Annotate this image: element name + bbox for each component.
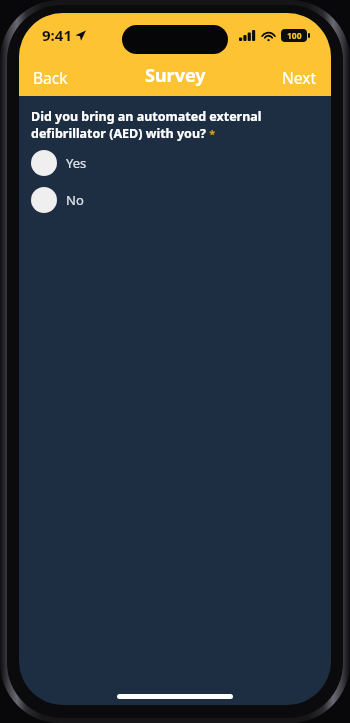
staticText: Yes	[66, 154, 87, 172]
button[interactable]: Select Yes	[31, 150, 319, 176]
staticText: Next	[282, 67, 317, 88]
button[interactable]: Back	[25, 62, 76, 93]
staticText: Back	[33, 67, 68, 88]
button[interactable]: Next	[274, 62, 325, 93]
staticText: 9:41	[42, 25, 72, 45]
other: Select Yes	[31, 150, 57, 176]
button[interactable]: Select No	[31, 187, 319, 213]
staticText: No	[66, 191, 84, 209]
staticText: 100	[287, 30, 302, 42]
staticText: Survey	[145, 63, 206, 88]
staticText: Did you bring an automated external defi…	[31, 108, 262, 142]
other: Select No	[31, 187, 57, 213]
